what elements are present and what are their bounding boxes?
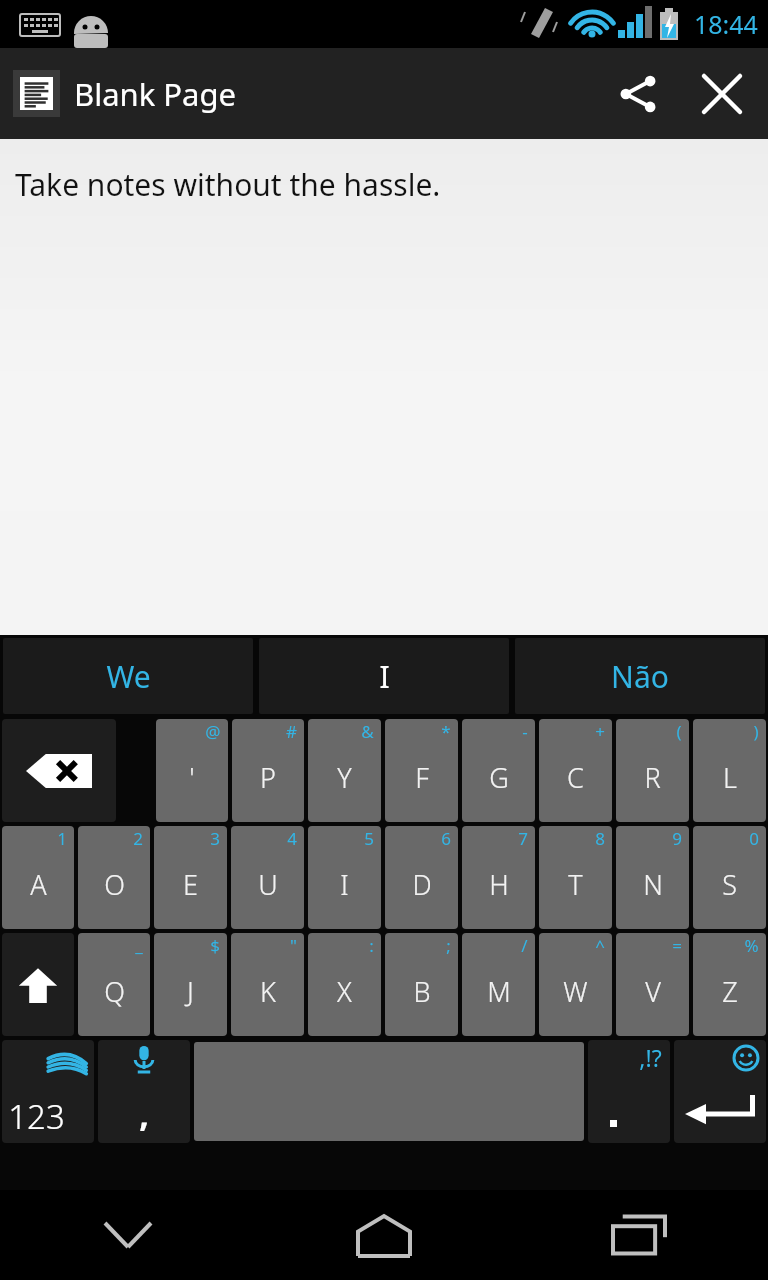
button[interactable]: Backspace — [2, 719, 116, 822]
button[interactable]: Shift — [2, 933, 74, 1036]
button[interactable]: Recent apps — [512, 1190, 768, 1280]
button[interactable]: + — [539, 719, 612, 822]
staticText: R — [644, 759, 661, 796]
staticText: _ — [135, 934, 143, 957]
staticText: ^ — [595, 934, 605, 957]
staticText: C — [567, 759, 584, 796]
staticText: 18:44 — [694, 7, 758, 41]
button[interactable]: Comma and voice input — [98, 1040, 190, 1143]
staticText: 6 — [441, 827, 451, 850]
button[interactable]: ) — [693, 719, 766, 822]
staticText: + — [595, 720, 605, 743]
staticText: / — [521, 934, 528, 957]
staticText: 123 — [8, 1094, 65, 1139]
staticText: $ — [210, 934, 220, 957]
staticText: 8 — [595, 827, 605, 850]
staticText: , — [139, 1091, 149, 1137]
staticText: N — [643, 866, 663, 903]
staticText: Blank Page — [74, 73, 237, 115]
staticText: 7 — [518, 827, 528, 850]
button[interactable]: Back — [0, 1190, 256, 1280]
button[interactable]: 0 — [693, 826, 766, 929]
button[interactable]: Home — [256, 1190, 512, 1280]
staticText: * — [441, 720, 451, 743]
button[interactable]: 4 — [231, 826, 304, 929]
staticText: B — [413, 973, 431, 1010]
staticText: T — [568, 866, 583, 903]
staticText: 1 — [57, 827, 67, 850]
button[interactable]: 3 — [154, 826, 227, 929]
button[interactable]: 8 — [539, 826, 612, 929]
staticText: K — [260, 973, 276, 1010]
button[interactable]: Close — [680, 52, 764, 136]
button[interactable]: Enter — [674, 1040, 766, 1143]
button[interactable]: / — [462, 933, 535, 1036]
button[interactable]: 9 — [616, 826, 689, 929]
staticText: U — [258, 866, 278, 903]
staticText: Não — [611, 656, 669, 697]
staticText: 4 — [287, 827, 297, 850]
staticText: L — [723, 759, 737, 796]
staticText: W — [563, 973, 588, 1010]
staticText: V — [645, 973, 661, 1010]
button[interactable]: I — [259, 638, 509, 714]
button[interactable]: : — [308, 933, 381, 1036]
button[interactable]: _ — [78, 933, 150, 1036]
button[interactable]: Não — [515, 638, 765, 714]
staticText: Z — [722, 973, 738, 1010]
staticText: 9 — [672, 827, 682, 850]
staticText: % — [744, 934, 759, 957]
staticText: ; — [446, 934, 451, 957]
staticText: We — [106, 656, 151, 697]
staticText: 2 — [133, 827, 143, 850]
staticText: M — [487, 973, 511, 1010]
button[interactable]: @ — [156, 719, 228, 822]
staticText: D — [412, 866, 432, 903]
staticText: A — [30, 866, 47, 903]
staticText: & — [361, 720, 374, 743]
staticText: ) — [753, 720, 759, 743]
staticText: 5 — [364, 827, 374, 850]
staticText: ,!? — [639, 1042, 662, 1073]
button[interactable]: # — [232, 719, 304, 822]
button[interactable]: ^ — [539, 933, 612, 1036]
staticText: Y — [337, 759, 352, 796]
button[interactable]: " — [231, 933, 304, 1036]
button[interactable]: 5 — [308, 826, 381, 929]
staticText: 0 — [749, 827, 759, 850]
button[interactable]: 6 — [385, 826, 458, 929]
button[interactable]: % — [693, 933, 766, 1036]
staticText: @ — [205, 720, 221, 743]
staticText: H — [489, 866, 509, 903]
staticText: # — [286, 720, 297, 743]
staticText: I — [379, 656, 390, 697]
button[interactable]: Punctuation — [588, 1040, 670, 1143]
button[interactable]: - — [462, 719, 535, 822]
button[interactable]: * — [385, 719, 458, 822]
staticText: ( — [676, 720, 682, 743]
staticText: 3 — [210, 827, 220, 850]
button[interactable]: App icon — [13, 70, 60, 117]
button[interactable]: Share — [596, 52, 680, 136]
button[interactable]: 1 — [2, 826, 74, 929]
staticText: - — [522, 720, 528, 743]
staticText: J — [187, 973, 194, 1010]
button[interactable]: ; — [385, 933, 458, 1036]
button[interactable]: 7 — [462, 826, 535, 929]
staticText: X — [337, 973, 352, 1010]
button[interactable]: ( — [616, 719, 689, 822]
staticText: I — [340, 866, 349, 903]
button[interactable]: $ — [154, 933, 227, 1036]
staticText: P — [260, 759, 276, 796]
staticText: " — [290, 934, 297, 957]
staticText: = — [672, 934, 682, 957]
staticText: O — [104, 866, 125, 903]
button[interactable]: We — [3, 638, 253, 714]
button[interactable]: 2 — [78, 826, 150, 929]
staticText: : — [369, 934, 374, 957]
button[interactable]: = — [616, 933, 689, 1036]
button[interactable]: Numbers — [2, 1040, 94, 1143]
button[interactable]: & — [308, 719, 381, 822]
staticText: F — [415, 759, 429, 796]
